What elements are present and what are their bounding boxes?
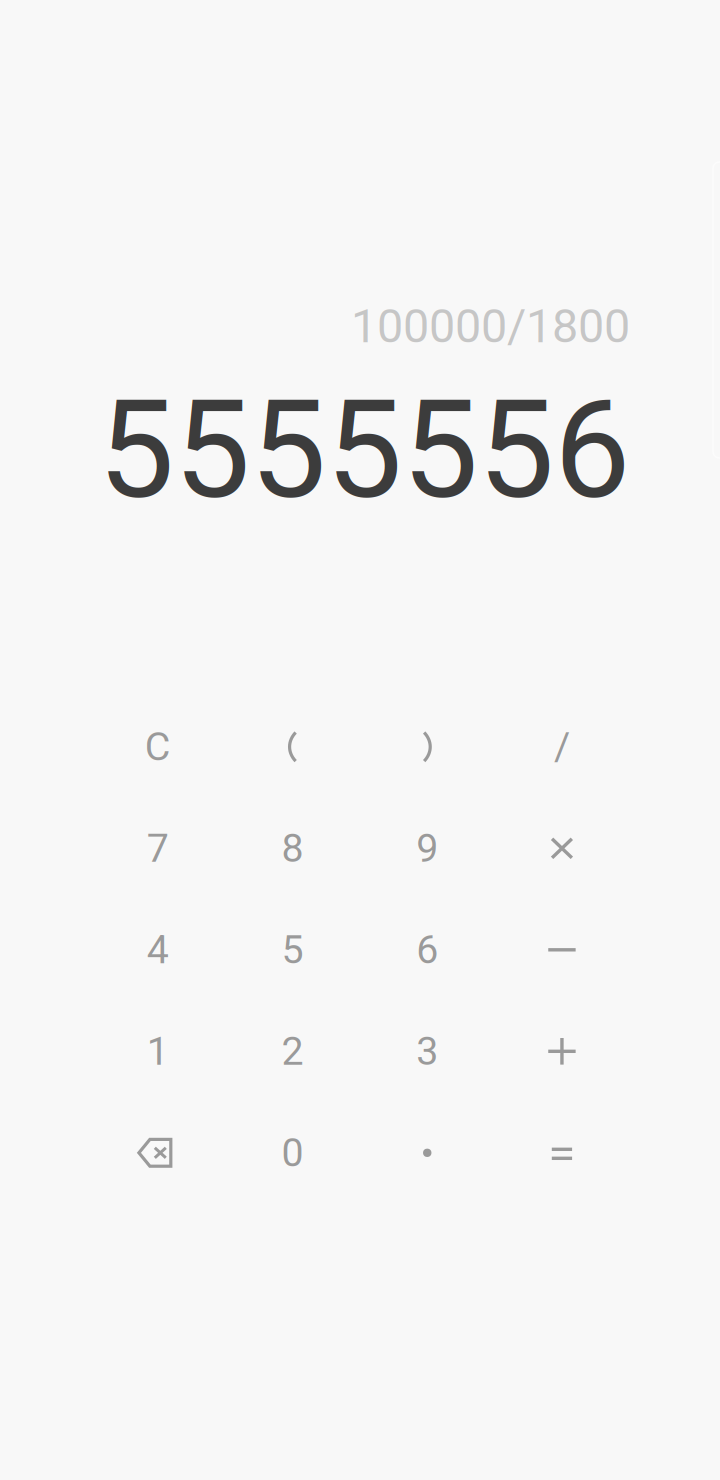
button[interactable]: 4	[90, 899, 225, 1001]
staticText: 3	[416, 1028, 438, 1074]
staticText: /	[554, 724, 570, 770]
button[interactable]: Open parenthesis	[225, 696, 360, 798]
button[interactable]: 6	[360, 899, 495, 1001]
button[interactable]: 5	[225, 899, 360, 1001]
staticText: 7	[147, 825, 169, 871]
staticText: 6	[416, 927, 438, 973]
button[interactable]: 7	[90, 798, 225, 899]
button[interactable]: 1	[90, 1001, 225, 1102]
button[interactable]: Equals	[495, 1102, 629, 1204]
button[interactable]: Close parenthesis	[360, 696, 495, 798]
button[interactable]: 8	[225, 798, 360, 899]
button[interactable]: Multiply	[495, 798, 629, 899]
button[interactable]: 9	[360, 798, 495, 899]
staticText: 4	[147, 927, 169, 973]
staticText: 8	[281, 825, 303, 871]
button[interactable]: /	[495, 696, 629, 798]
button[interactable]: 2	[225, 1001, 360, 1102]
staticText: 9	[416, 825, 438, 871]
button[interactable]: Decimal point	[360, 1102, 495, 1204]
staticText: 1	[147, 1028, 169, 1074]
staticText: 2	[281, 1028, 303, 1074]
staticText: 5	[281, 927, 303, 973]
button[interactable]: Delete	[90, 1102, 225, 1204]
staticText: 0	[281, 1130, 303, 1176]
staticText: 100000/1800	[351, 299, 630, 354]
button[interactable]: Subtract	[495, 899, 629, 1001]
staticText: 5555556	[98, 371, 630, 530]
button[interactable]: Add	[495, 1001, 629, 1102]
staticText: C	[145, 724, 171, 770]
button[interactable]: C	[90, 696, 225, 798]
button[interactable]: 3	[360, 1001, 495, 1102]
button[interactable]: 0	[225, 1102, 360, 1204]
